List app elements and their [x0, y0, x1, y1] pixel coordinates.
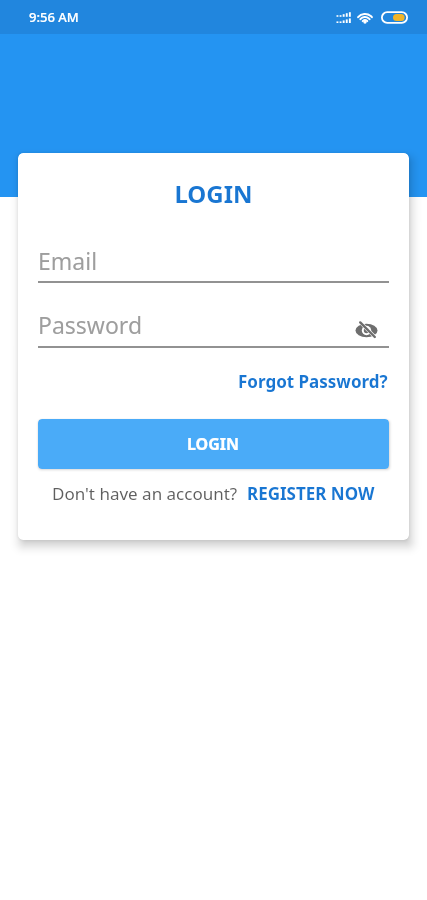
button[interactable]: LOGIN [38, 419, 389, 469]
button[interactable]: REGISTER NOW [247, 482, 375, 505]
staticText: LOGIN [187, 433, 240, 455]
staticText: Email [38, 245, 98, 275]
staticText: LOGIN [38, 177, 389, 210]
button[interactable]: Forgot Password? [238, 370, 388, 393]
staticText: Password [38, 309, 143, 340]
button[interactable]: Email [38, 245, 389, 281]
staticText: Don't have an account? [52, 482, 247, 505]
staticText: 9:56 AM [29, 8, 79, 26]
button[interactable]: Password [38, 309, 389, 346]
